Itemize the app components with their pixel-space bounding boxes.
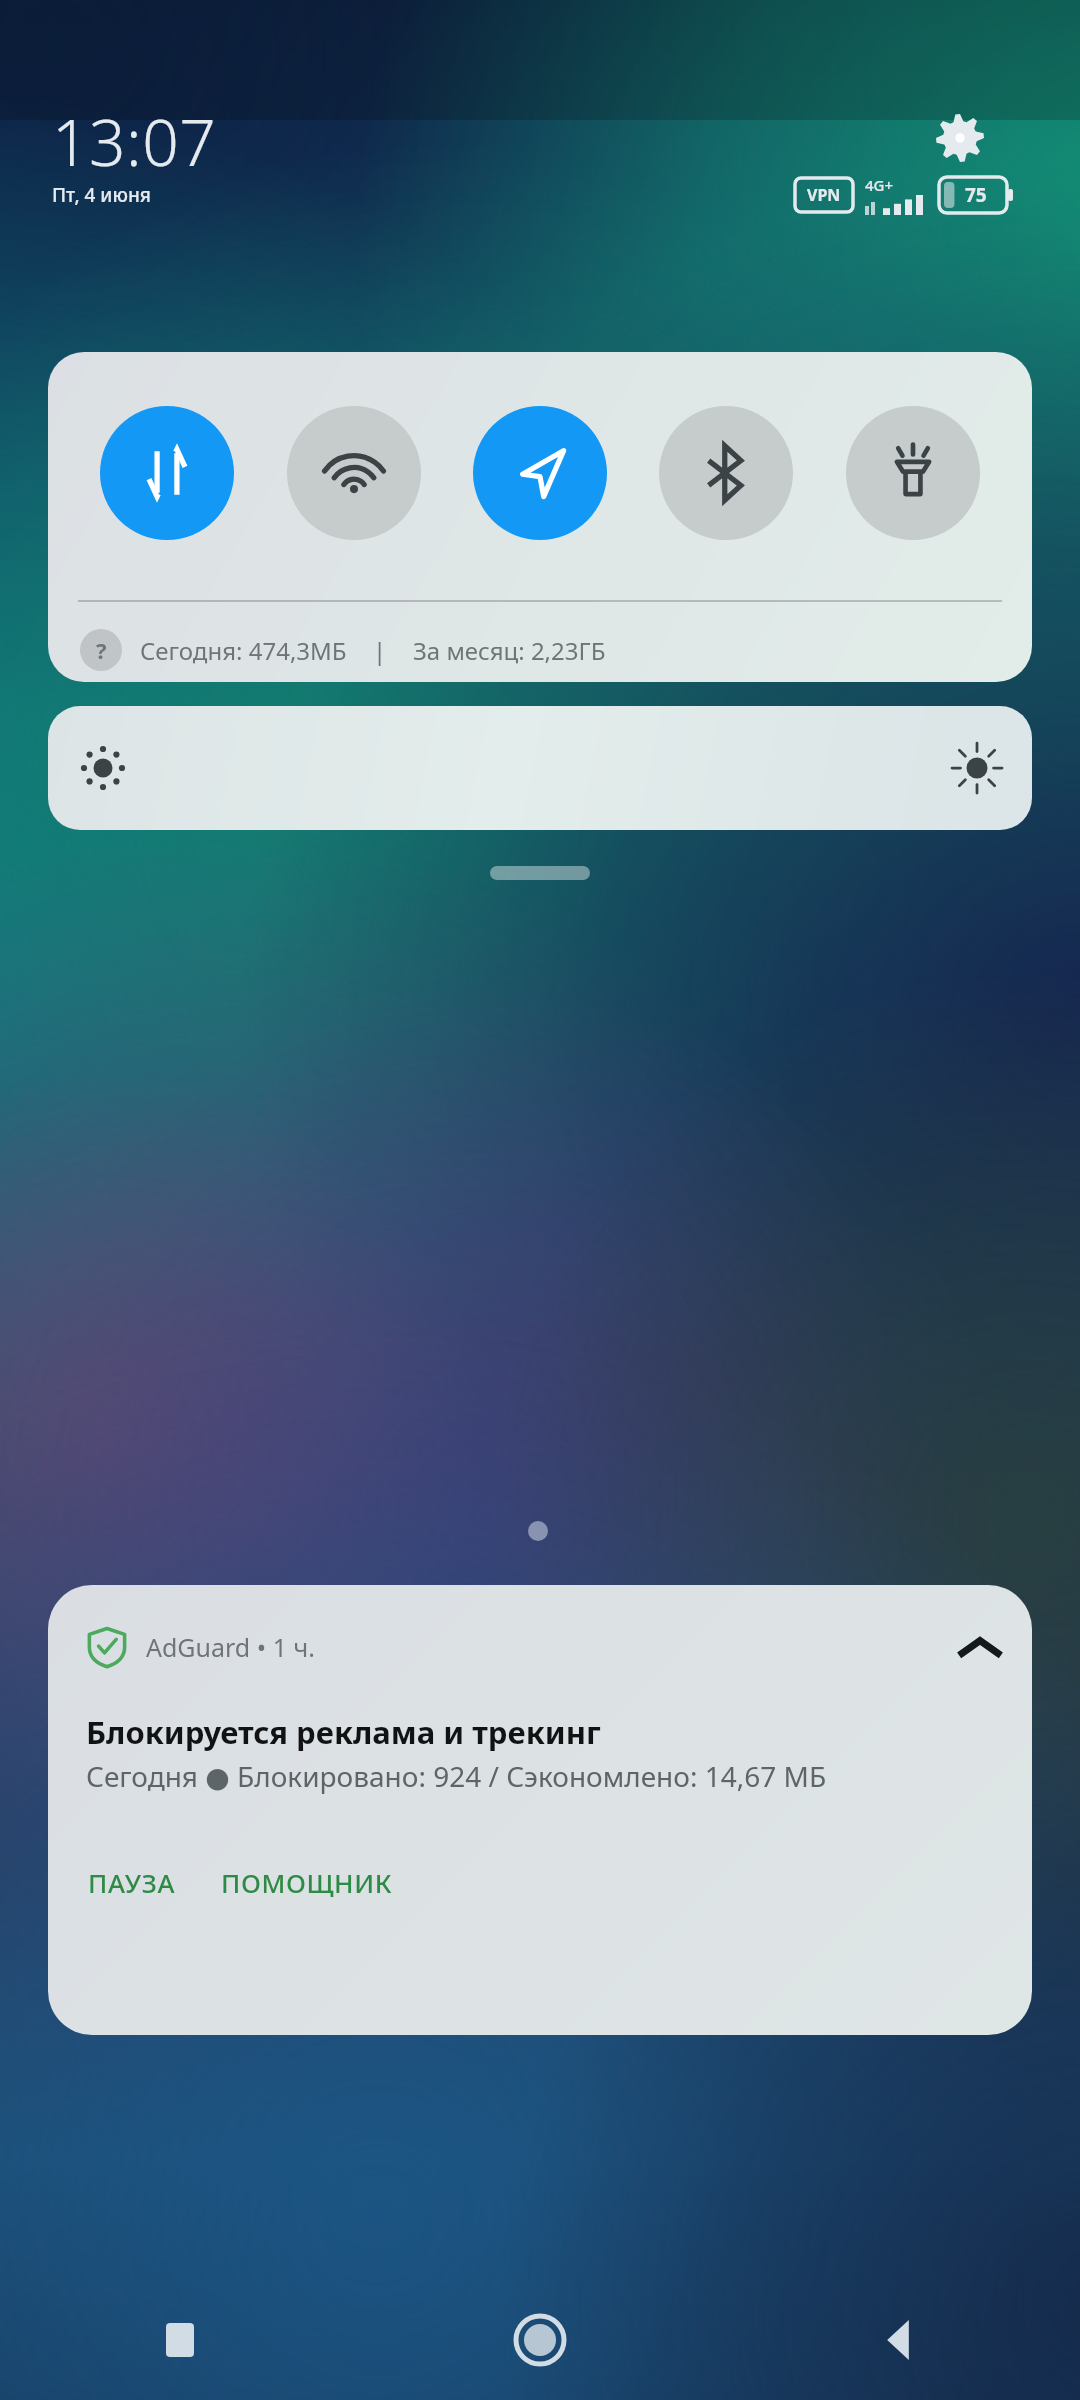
button[interactable]: AdGuard • 1 ч. xyxy=(48,1585,1032,2035)
staticText: AdGuard • 1 ч. xyxy=(146,1630,315,1664)
staticText: Пт, 4 июня xyxy=(52,182,151,208)
button[interactable]: Settings xyxy=(924,102,996,174)
staticText: ПОМОЩНИК xyxy=(221,1865,393,1900)
button[interactable]: ПАУЗА xyxy=(74,1853,189,1912)
button[interactable]: Bluetooth xyxy=(659,406,793,540)
button[interactable]: Collapse xyxy=(948,1615,1012,1679)
staticText: 13:07 xyxy=(52,98,217,185)
button[interactable] xyxy=(490,866,590,880)
staticText: 75 xyxy=(965,182,987,208)
staticText: За месяц: 2,23ГБ xyxy=(413,634,606,667)
button[interactable] xyxy=(48,706,1032,830)
staticText: ПАУЗА xyxy=(88,1865,175,1900)
button[interactable]: ? xyxy=(80,624,606,676)
button[interactable]: Flashlight xyxy=(846,406,980,540)
button[interactable]: Recents xyxy=(0,2280,360,2400)
staticText: VPN xyxy=(807,184,841,206)
button[interactable]: ПОМОЩНИК xyxy=(207,1853,407,1912)
button[interactable]: Back xyxy=(720,2280,1080,2400)
staticText: Блокируется реклама и трекинг xyxy=(86,1711,601,1753)
staticText: Сегодня ● Блокировано: 924 / Сэкономлено… xyxy=(86,1757,827,1795)
staticText: | xyxy=(373,634,387,667)
staticText: 4G+ xyxy=(865,175,894,195)
button[interactable]: Wi-Fi xyxy=(287,406,421,540)
staticText: ? xyxy=(96,635,107,665)
staticText: Сегодня: 474,3МБ xyxy=(140,634,347,667)
button[interactable]: Location xyxy=(473,406,607,540)
button[interactable]: Mobile data xyxy=(100,406,234,540)
button[interactable]: Home xyxy=(360,2280,720,2400)
